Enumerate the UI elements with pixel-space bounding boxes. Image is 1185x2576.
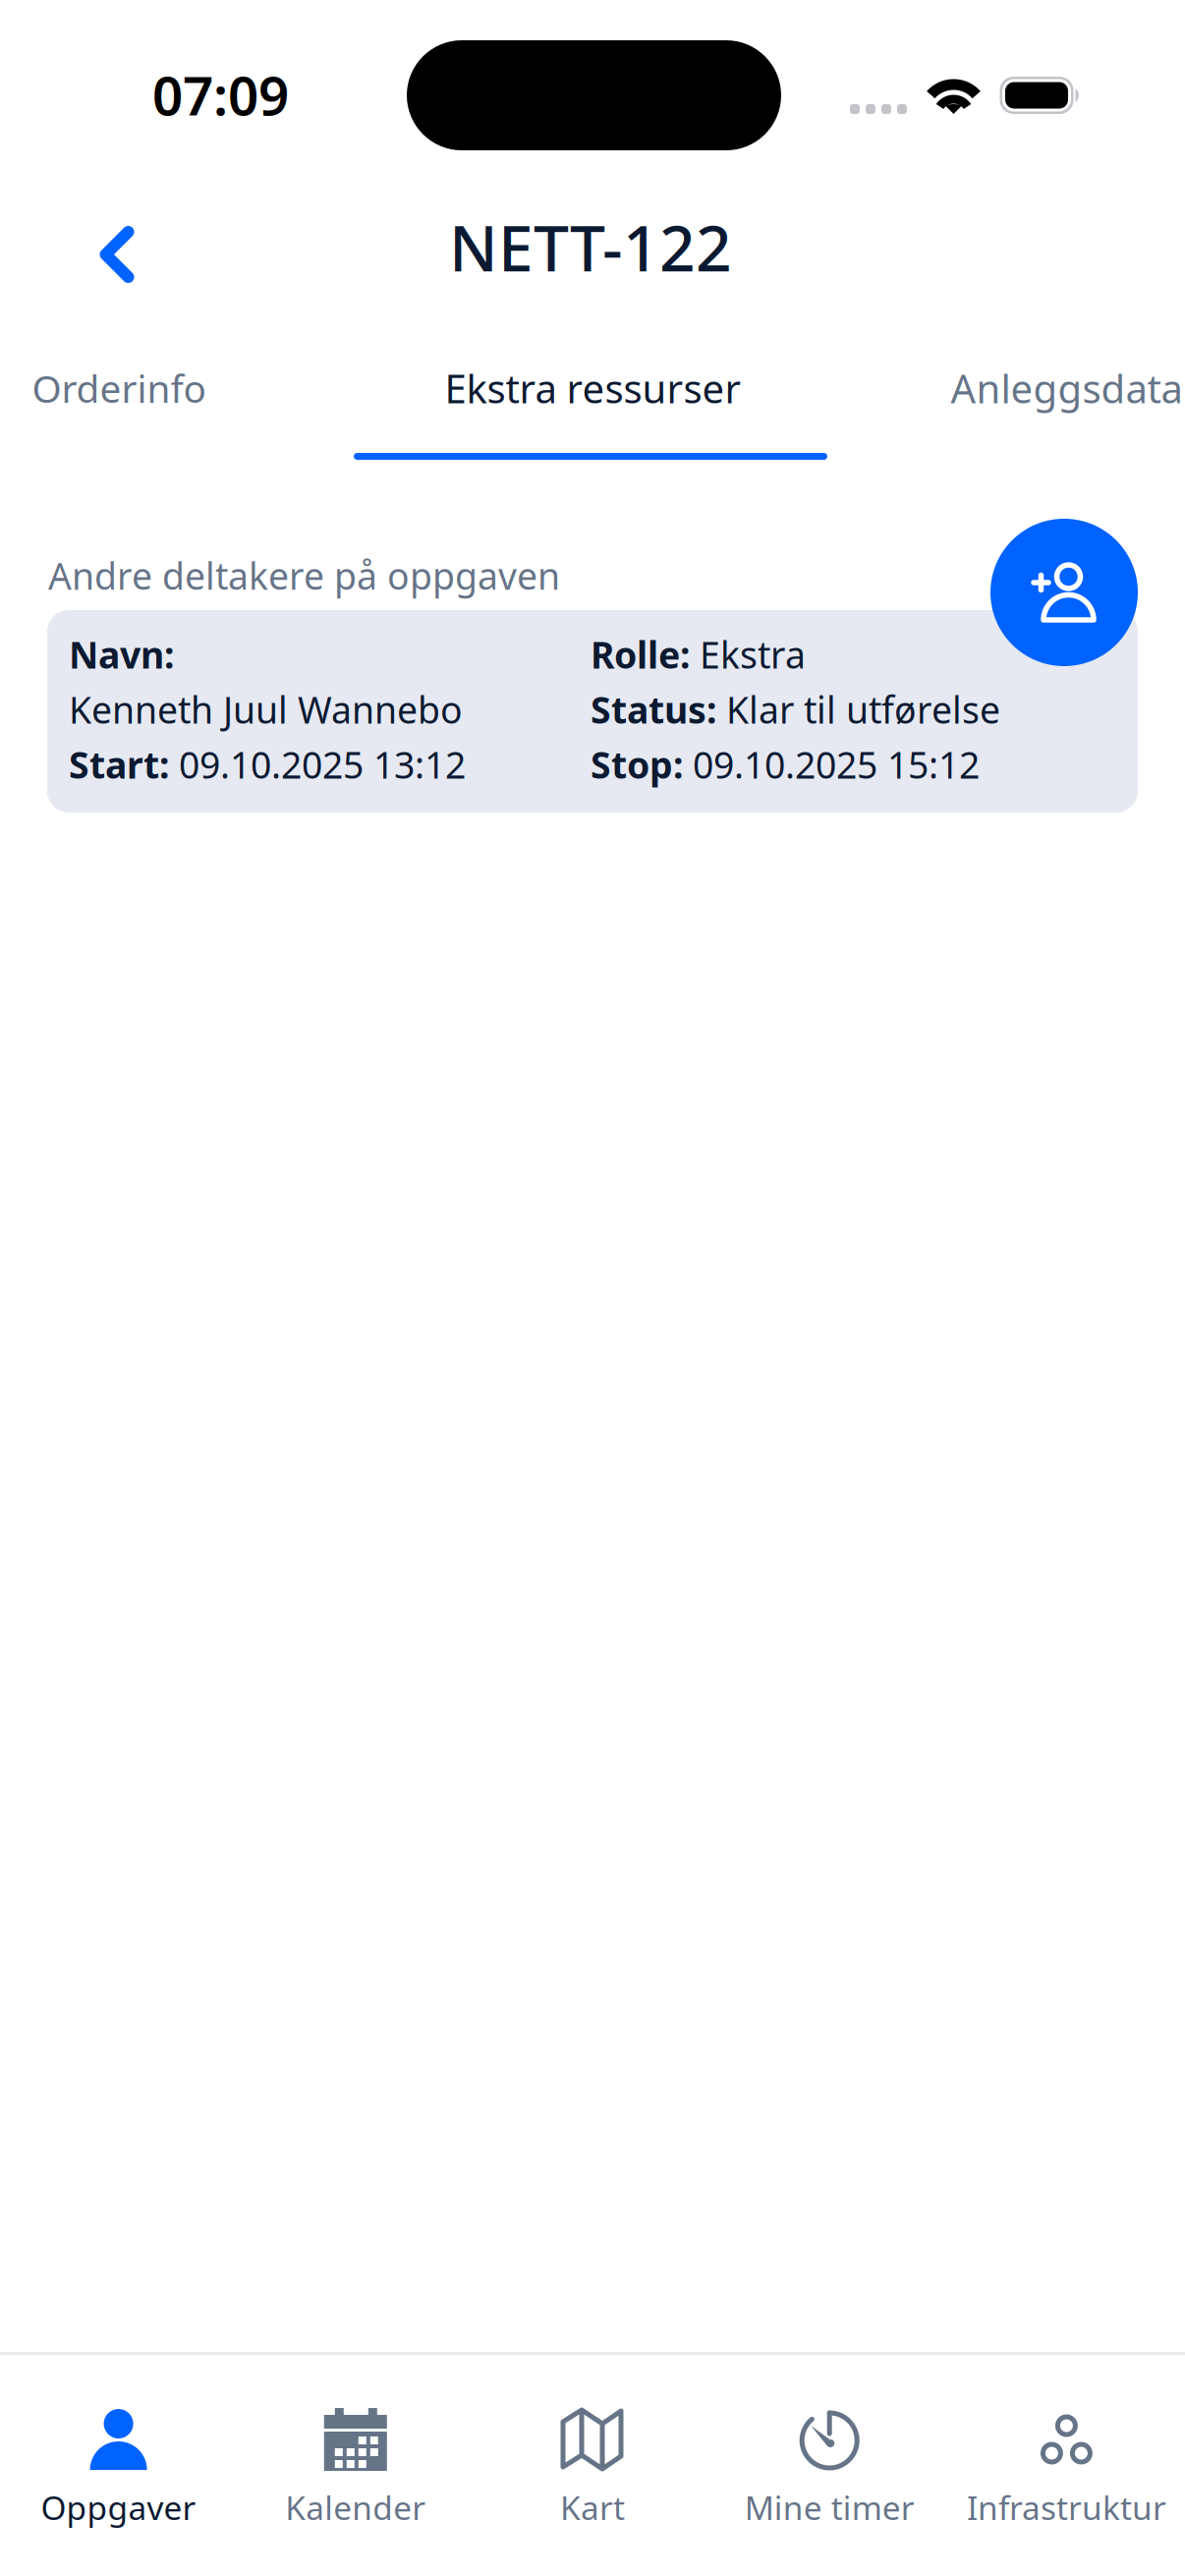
- staticText: Navn:: [69, 630, 174, 679]
- button[interactable]: Oppgaver: [0, 2355, 237, 2576]
- staticText: Anleggsdata: [951, 362, 1183, 414]
- staticText: Oppgaver: [41, 2486, 196, 2529]
- button[interactable]: Infrastruktur: [948, 2355, 1185, 2576]
- button[interactable]: Legg til deltaker: [990, 519, 1138, 666]
- staticText: Ekstra ressurser: [445, 362, 741, 414]
- staticText: Kenneth Juul Wannebo: [69, 685, 463, 734]
- button[interactable]: Mine timer: [711, 2355, 948, 2576]
- staticText: Start:: [69, 740, 169, 789]
- staticText: Stop:: [591, 740, 683, 789]
- staticText: 09.10.2025 13:12: [169, 740, 466, 789]
- button[interactable]: Kart: [474, 2355, 711, 2576]
- staticText: Klar til utførelse: [716, 685, 1000, 734]
- button[interactable]: Tilbake: [70, 197, 164, 311]
- staticText: Infrastruktur: [967, 2486, 1166, 2529]
- staticText: NETT-122: [449, 205, 732, 289]
- button[interactable]: Orderinfo: [0, 337, 238, 439]
- button[interactable]: Kalender: [237, 2355, 474, 2576]
- staticText: Ekstra: [690, 630, 806, 679]
- button[interactable]: Ekstra ressurser: [238, 337, 948, 439]
- staticText: 09.10.2025 15:12: [683, 740, 980, 789]
- staticText: Rolle:: [591, 630, 690, 679]
- staticText: Mine timer: [745, 2486, 914, 2529]
- staticText: Andre deltakere på oppgaven: [48, 551, 560, 600]
- staticText: Status:: [591, 685, 716, 734]
- staticText: Kart: [560, 2486, 625, 2529]
- button[interactable]: Anleggsdata: [948, 337, 1185, 439]
- staticText: Kalender: [285, 2486, 426, 2529]
- staticText: 07:09: [152, 59, 289, 130]
- staticText: Orderinfo: [32, 363, 206, 413]
